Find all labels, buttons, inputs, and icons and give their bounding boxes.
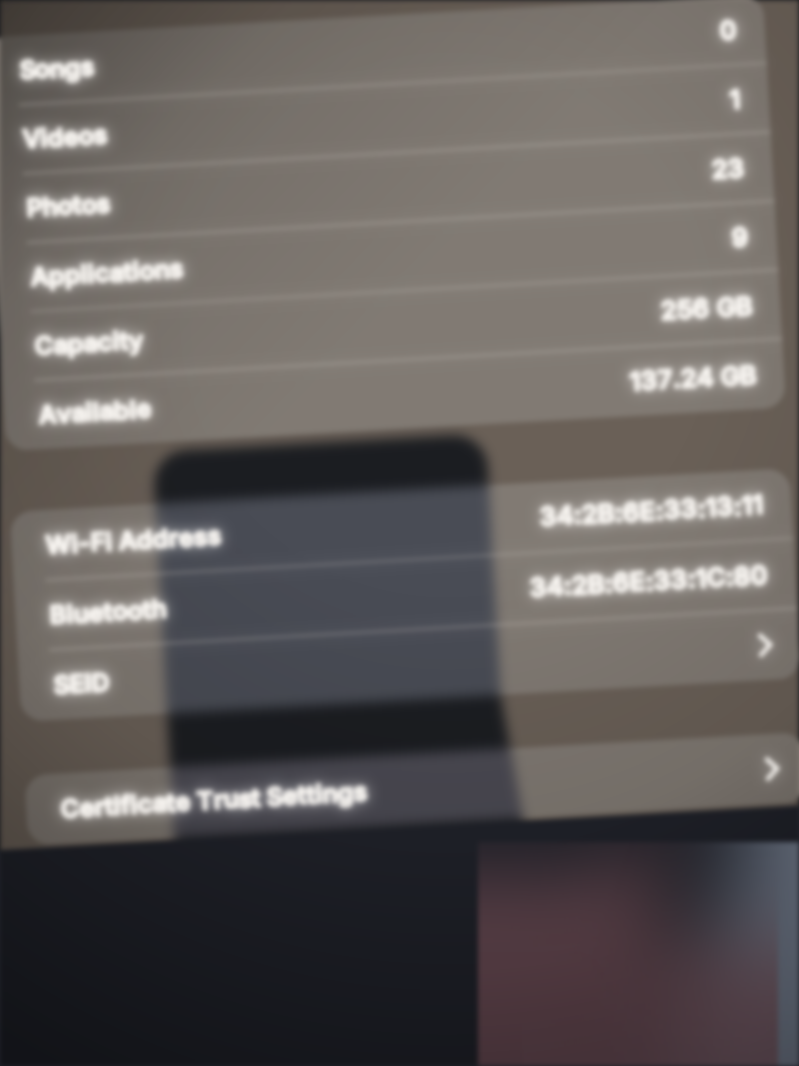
button[interactable]: About device information: [0, 0, 799, 1066]
